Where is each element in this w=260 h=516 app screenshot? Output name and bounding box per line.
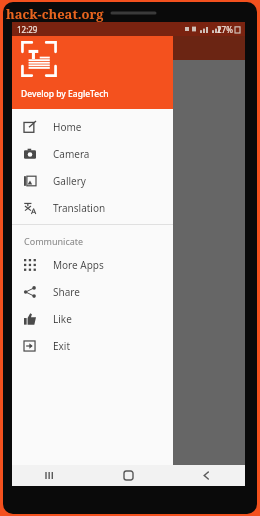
button[interactable]: Like <box>12 305 173 332</box>
staticText: hack-cheat.org <box>6 5 104 23</box>
button[interactable]: Back <box>167 465 245 486</box>
button[interactable]: Recents <box>12 465 89 486</box>
staticText: More Apps <box>53 258 104 272</box>
staticText: 12:29 <box>17 24 38 35</box>
button[interactable]: Home <box>12 113 173 140</box>
staticText: 27% <box>217 24 233 35</box>
button[interactable]: Home <box>89 465 167 486</box>
staticText: Home <box>53 120 82 134</box>
staticText: Translation <box>53 201 106 215</box>
staticText: Camera <box>53 147 90 161</box>
button[interactable]: Gallery <box>12 167 173 194</box>
staticText: Share <box>53 285 80 299</box>
staticText: Communicate <box>24 235 84 247</box>
button[interactable]: Translation <box>12 194 173 221</box>
staticText: Gallery <box>53 174 86 188</box>
staticText: Exit <box>53 339 71 353</box>
staticText: Develop by EagleTech <box>21 88 109 100</box>
button[interactable]: Share <box>12 278 173 305</box>
button[interactable]: Camera <box>12 140 173 167</box>
button[interactable]: Exit <box>12 332 173 359</box>
staticText: Like <box>53 312 72 326</box>
button[interactable]: More Apps <box>12 251 173 278</box>
